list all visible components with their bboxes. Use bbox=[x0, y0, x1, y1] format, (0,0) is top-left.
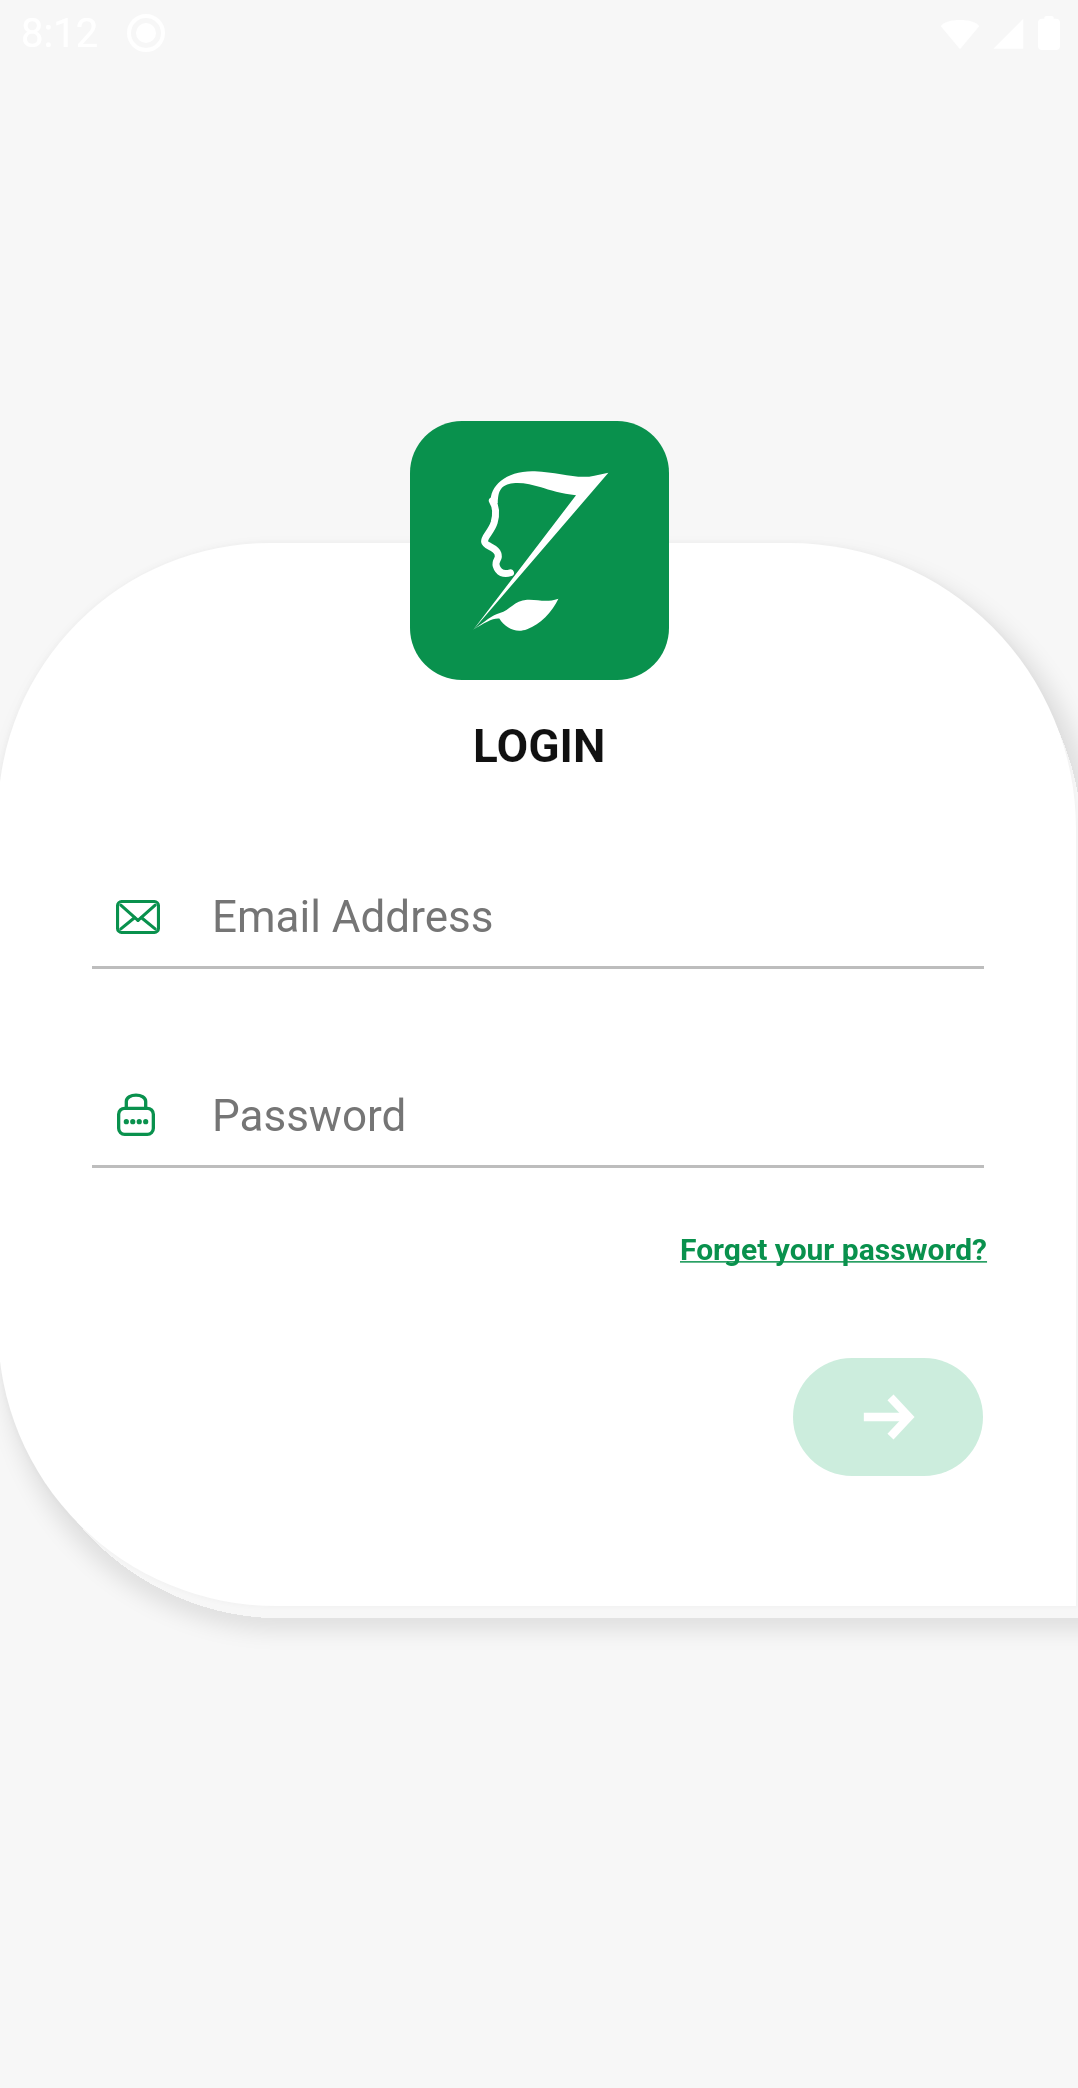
staticText: LOGIN bbox=[473, 719, 606, 773]
button[interactable]: Sign in bbox=[793, 1358, 983, 1476]
staticText: Email Address bbox=[212, 891, 494, 943]
staticText: Password bbox=[212, 1090, 407, 1142]
button[interactable]: Password bbox=[92, 1082, 984, 1149]
button[interactable]: Email Address bbox=[92, 883, 984, 950]
staticText: Forget your password? bbox=[680, 1232, 988, 1267]
button[interactable]: Forget your password? bbox=[680, 1232, 988, 1267]
